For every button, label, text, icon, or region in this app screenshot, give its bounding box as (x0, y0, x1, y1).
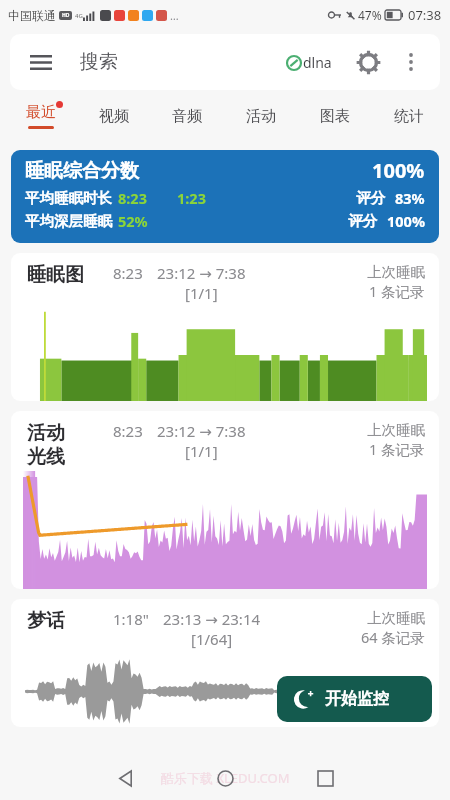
staticText: 07:38 (408, 6, 442, 24)
staticText: 83% (395, 188, 425, 208)
staticText: 音频 (172, 107, 202, 126)
staticText: 最近 (26, 103, 56, 122)
button[interactable]: Home (199, 756, 251, 800)
staticText: 1 条记录 (369, 281, 425, 301)
staticText: 上次睡眠 (367, 609, 425, 627)
button[interactable]: 梦话 (11, 599, 439, 727)
staticText: 睡眠图 (27, 263, 84, 287)
button[interactable]: 开始监控 (277, 676, 432, 722)
button[interactable]: 图表 (298, 94, 372, 138)
staticText: … (170, 8, 179, 23)
staticText: 光线 (27, 445, 65, 469)
button[interactable]: 睡眠综合分数 (11, 150, 439, 243)
staticText: 评分 (348, 212, 377, 230)
staticText: [1/1] (185, 283, 218, 303)
button[interactable]: More options (396, 47, 426, 77)
staticText: HD (62, 12, 70, 19)
staticText: 睡眠综合分数 (25, 159, 139, 183)
staticText: 视频 (99, 107, 129, 126)
staticText: 统计 (394, 107, 424, 126)
button[interactable]: 最近 (4, 94, 77, 138)
button[interactable]: 睡眠图 (11, 253, 439, 401)
staticText: 100% (372, 157, 425, 184)
button[interactable]: 统计 (372, 94, 446, 138)
button[interactable]: Back (99, 756, 151, 800)
staticText: 8:23 (113, 421, 143, 441)
button[interactable]: 活动 (224, 94, 298, 138)
staticText: [1/64] (191, 629, 233, 649)
staticText: 1 条记录 (369, 439, 425, 459)
staticText: 平均睡眠时长 (25, 189, 112, 207)
staticText: dlna (303, 53, 332, 72)
button[interactable]: DLNA (285, 53, 334, 72)
staticText: 中国联通 (8, 8, 56, 23)
staticText: 8:23 (113, 263, 143, 283)
staticText: 52% (118, 211, 148, 231)
staticText: 100% (387, 211, 425, 231)
staticText: 47% (358, 7, 382, 23)
staticText: 上次睡眠 (367, 263, 425, 281)
staticText: 23:13 → 23:14 (163, 609, 261, 629)
staticText: 活动 (246, 107, 276, 126)
staticText: 23:12 → 7:38 (157, 421, 246, 441)
staticText: 评分 (356, 189, 385, 207)
staticText: 梦话 (27, 609, 65, 633)
staticText: 图表 (320, 107, 350, 126)
staticText: 23:12 → 7:38 (157, 263, 246, 283)
staticText: 活动 (27, 421, 65, 445)
button[interactable]: 音频 (150, 94, 224, 138)
staticText: 开始监控 (325, 689, 389, 709)
staticText: 4G (75, 12, 83, 20)
staticText: 搜索 (80, 50, 118, 74)
staticText: 平均深层睡眠 (25, 212, 112, 230)
button[interactable]: 活动 (11, 411, 439, 589)
staticText: 64 条记录 (361, 627, 425, 647)
staticText: 上次睡眠 (367, 421, 425, 439)
staticText: 1:18" (113, 609, 149, 629)
button[interactable]: 视频 (77, 94, 150, 138)
button[interactable]: 搜索 (80, 50, 285, 74)
staticText: 8:23 (118, 188, 147, 208)
button[interactable]: Settings (352, 46, 384, 78)
button[interactable]: Recent apps (299, 756, 351, 800)
staticText: [1/1] (185, 441, 218, 461)
button[interactable]: Menu (24, 45, 58, 79)
staticText: 1:23 (177, 188, 206, 208)
staticText: 酷乐下载 XLEDU.COM (161, 769, 290, 787)
